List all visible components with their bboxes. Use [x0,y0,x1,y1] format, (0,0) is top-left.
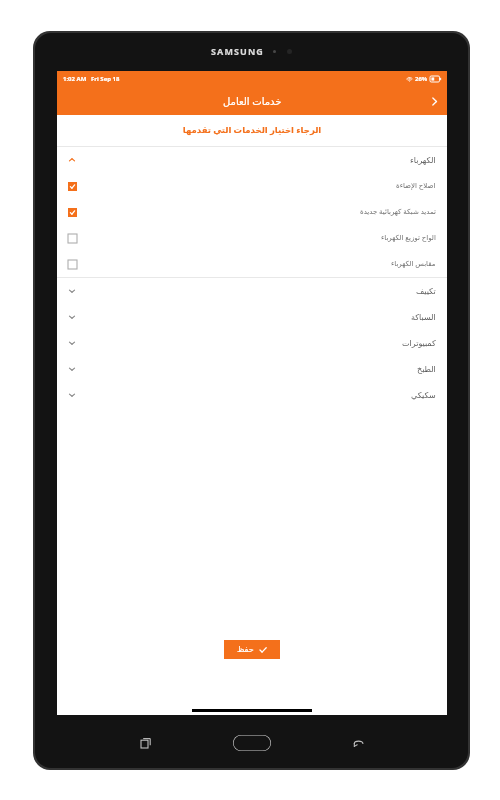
button[interactable]: سكيكي [57,382,447,408]
button[interactable]: تمديد شبكة كهربائية جديدة [57,199,447,225]
staticText: سكيكي [411,391,436,400]
button[interactable]: Back [347,732,369,754]
button[interactable]: حفظ [224,640,280,659]
button[interactable]: السباكة [57,304,447,330]
button[interactable]: Recents [135,732,157,754]
staticText: السباكة [411,313,436,322]
button[interactable]: الكهرباء [57,147,447,173]
button[interactable]: مقابس الكهرباء [57,251,447,277]
staticText: تمديد شبكة كهربائية جديدة [360,207,436,217]
staticText: 26% [415,75,428,83]
button[interactable]: كمبيوترات [57,330,447,356]
staticText: 1:02 AM [63,75,87,83]
button[interactable]: تكييف [57,278,447,304]
staticText: الرجاء اختيار الخدمات التي تقدمها [57,124,447,136]
staticText: اصلاح الإضاءة [396,181,436,191]
staticText: مقابس الكهرباء [391,259,436,269]
staticText: تكييف [416,287,436,296]
button[interactable]: اصلاح الإضاءة [57,173,447,199]
button[interactable]: Back [421,88,447,114]
staticText: SAMSUNG [211,45,264,57]
staticText: كمبيوترات [402,339,436,348]
staticText: خدمات العامل [223,94,282,108]
button[interactable]: الواح توزيع الكهرباء [57,225,447,251]
staticText: الواح توزيع الكهرباء [381,233,436,243]
staticText: الطبخ [417,365,436,374]
button[interactable]: الطبخ [57,356,447,382]
button[interactable]: خدمات العامل [57,86,447,115]
button[interactable]: Home [233,735,271,751]
staticText: Fri Sep 18 [91,75,120,83]
staticText: الكهرباء [410,156,436,165]
staticText: حفظ [237,645,254,654]
